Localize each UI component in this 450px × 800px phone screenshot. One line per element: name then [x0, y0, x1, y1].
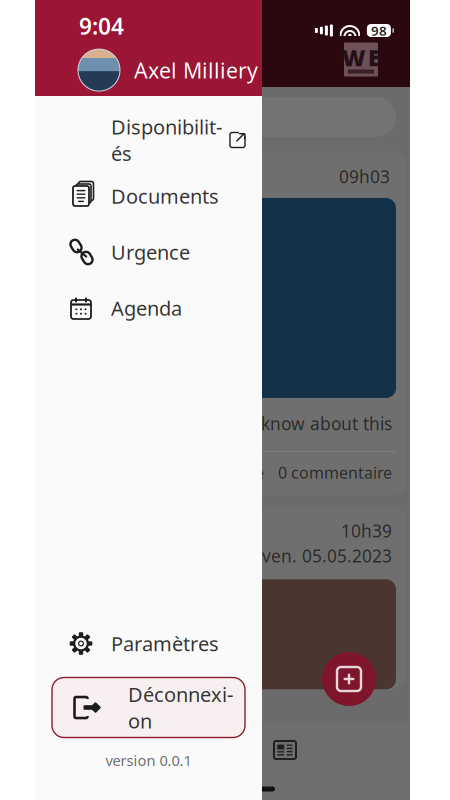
button[interactable]: Disponibilités	[35, 112, 262, 168]
staticText: Axel Milliery	[134, 56, 258, 84]
button[interactable]: Actualités	[250, 726, 320, 774]
staticText: 09h03	[339, 165, 390, 188]
staticText: 0 like	[225, 462, 264, 483]
staticText: 0 commentaire	[278, 462, 392, 483]
staticText: ven. 05.05.2023	[262, 544, 392, 567]
staticText: …o let you know about this	[172, 412, 392, 435]
button[interactable]: Agenda	[35, 280, 262, 336]
staticText: E	[368, 42, 380, 72]
staticText: Déconnexion	[128, 681, 233, 734]
button[interactable]: Paramètres	[35, 615, 262, 671]
staticText: Disponibilités	[111, 113, 222, 166]
staticText: Urgence	[111, 239, 190, 265]
staticText: Documents	[111, 183, 219, 209]
staticText: 10h39	[341, 519, 392, 542]
button[interactable]: Urgence	[35, 224, 262, 280]
button[interactable]: Axel Milliery	[35, 41, 258, 91]
staticText: W	[342, 42, 366, 72]
staticText: 98	[371, 22, 387, 39]
staticText: version 0.0.1	[105, 750, 191, 770]
button[interactable]: Déconnexion	[52, 677, 245, 737]
button[interactable]: Documents	[35, 168, 262, 224]
staticText: Paramètres	[111, 630, 219, 657]
staticText: 9:04	[79, 11, 124, 41]
button[interactable]: Nouvelle publication	[322, 652, 376, 706]
button[interactable]: Messages	[90, 726, 160, 774]
staticText: Agenda	[111, 295, 182, 321]
